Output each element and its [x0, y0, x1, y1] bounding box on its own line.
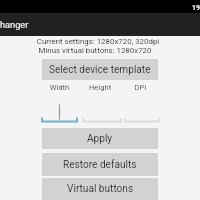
button[interactable]: Height input — [82, 100, 122, 124]
staticText: hanger — [0, 19, 29, 30]
staticText: Virtual buttons — [67, 183, 134, 195]
staticText: Minus virtual buttons: 1280x720 — [0, 46, 193, 55]
button[interactable]: DPI input — [124, 100, 160, 124]
staticText: Select device template — [49, 64, 151, 76]
button[interactable]: Width input — [41, 100, 78, 124]
staticText: Height — [80, 83, 120, 92]
button[interactable]: Apply — [42, 128, 158, 149]
staticText: Apply — [87, 133, 113, 145]
button[interactable]: Select device template — [42, 59, 158, 80]
button[interactable]: Restore defaults — [42, 153, 158, 176]
staticText: Current settings: 1280x720, 320dpi — [0, 37, 196, 46]
staticText: 19 — [192, 4, 200, 12]
staticText: Width — [39, 83, 80, 92]
staticText: Restore defaults — [63, 159, 137, 171]
button[interactable]: Virtual buttons — [42, 178, 158, 200]
staticText: DPI — [120, 83, 161, 92]
